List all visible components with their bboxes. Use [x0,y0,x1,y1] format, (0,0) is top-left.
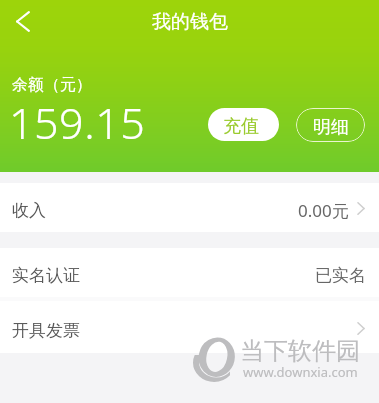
button[interactable]: 开具发票 [0,301,379,353]
staticText: 当下软件园 [240,336,360,366]
staticText: 明细 [313,116,349,139]
button[interactable]: 充值 [208,108,279,141]
staticText: 已实名 [315,265,366,286]
button[interactable]: 实名认证 [0,248,379,297]
button[interactable]: 收入 [0,183,379,232]
button[interactable]: 明细 [296,108,365,142]
staticText: 0.00元 [298,199,349,222]
staticText: www.downxia.com [243,363,358,381]
staticText: 充值 [223,115,259,138]
staticText: 实名认证 [12,265,80,286]
staticText: 开具发票 [12,320,80,341]
button[interactable]: Back [0,0,44,43]
staticText: 余额（元） [12,75,92,95]
staticText: 收入 [12,200,46,221]
staticText: 我的钱包 [152,10,228,34]
staticText: 159.15 [9,93,146,152]
